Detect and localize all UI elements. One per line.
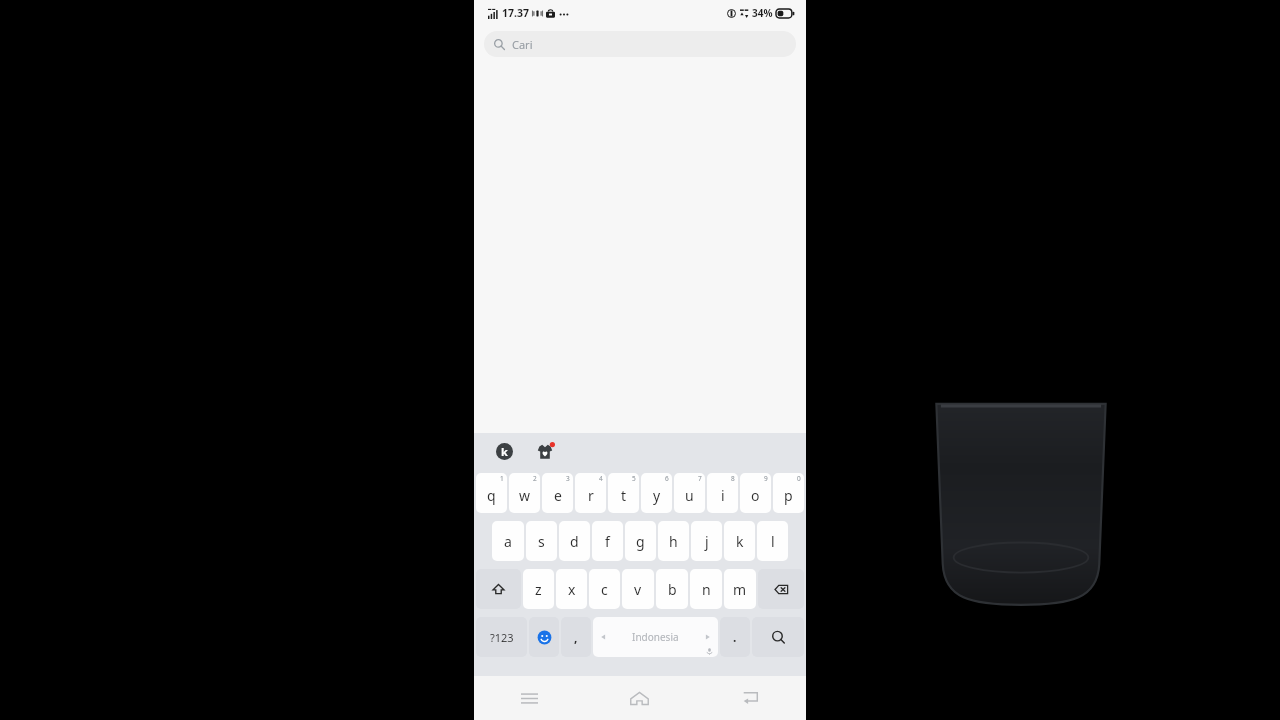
- staticText: Cari: [512, 37, 533, 52]
- button[interactable]: 5: [608, 473, 639, 513]
- staticText: n: [702, 580, 711, 599]
- staticText: o: [751, 486, 760, 505]
- button[interactable]: Stickers: [535, 442, 555, 462]
- staticText: v: [634, 580, 642, 599]
- button[interactable]: Back: [695, 676, 806, 720]
- staticText: ,: [574, 629, 578, 645]
- button[interactable]: j: [691, 521, 722, 561]
- staticText: h: [669, 532, 678, 551]
- staticText: t: [621, 486, 627, 505]
- button[interactable]: g: [625, 521, 656, 561]
- button[interactable]: 2: [509, 473, 540, 513]
- staticText: 0: [797, 474, 801, 483]
- button[interactable]: b: [656, 569, 688, 609]
- button[interactable]: ,: [561, 617, 591, 657]
- staticText: w: [519, 486, 531, 505]
- button[interactable]: v: [622, 569, 654, 609]
- button[interactable]: d: [559, 521, 590, 561]
- staticText: 7: [698, 474, 702, 483]
- button[interactable]: a: [492, 521, 524, 561]
- staticText: a: [504, 532, 512, 551]
- staticText: z: [535, 580, 542, 599]
- staticText: x: [568, 580, 576, 599]
- button[interactable]: k: [724, 521, 755, 561]
- staticText: k: [501, 444, 508, 459]
- staticText: 6: [665, 474, 669, 483]
- button[interactable]: Shift: [476, 569, 521, 609]
- staticText: l: [771, 532, 775, 551]
- button[interactable]: 6: [641, 473, 672, 513]
- staticText: s: [538, 532, 545, 551]
- staticText: 17.37: [502, 6, 529, 20]
- button[interactable]: x: [556, 569, 587, 609]
- button[interactable]: c: [589, 569, 620, 609]
- staticText: m: [733, 580, 747, 599]
- button[interactable]: Keyboard menu: [496, 443, 513, 460]
- staticText: r: [588, 486, 594, 505]
- staticText: 3: [566, 474, 570, 483]
- button[interactable]: l: [757, 521, 788, 561]
- button[interactable]: 0: [773, 473, 804, 513]
- staticText: 2: [533, 474, 537, 483]
- button[interactable]: h: [658, 521, 689, 561]
- staticText: b: [668, 580, 677, 599]
- staticText: i: [721, 486, 725, 505]
- button[interactable]: 1: [476, 473, 507, 513]
- button[interactable]: Search: [752, 617, 804, 657]
- staticText: ?123: [490, 630, 514, 645]
- staticText: g: [636, 532, 645, 551]
- button[interactable]: 4: [575, 473, 606, 513]
- button[interactable]: Space: [593, 617, 718, 657]
- staticText: q: [487, 486, 496, 505]
- staticText: y: [653, 486, 661, 505]
- button[interactable]: 3: [542, 473, 573, 513]
- staticText: c: [601, 580, 608, 599]
- button[interactable]: m: [724, 569, 756, 609]
- staticText: u: [685, 486, 694, 505]
- button[interactable]: Home: [584, 676, 695, 720]
- button[interactable]: s: [526, 521, 557, 561]
- staticText: 1: [500, 474, 504, 483]
- button[interactable]: ?123: [476, 617, 527, 657]
- staticText: 8: [731, 474, 735, 483]
- button[interactable]: n: [690, 569, 722, 609]
- staticText: p: [784, 486, 793, 505]
- button[interactable]: 8: [707, 473, 738, 513]
- staticText: 9: [764, 474, 768, 483]
- button[interactable]: Backspace: [758, 569, 804, 609]
- staticText: 34%: [752, 6, 773, 20]
- staticText: e: [554, 486, 562, 505]
- staticText: 5: [632, 474, 636, 483]
- staticText: d: [570, 532, 579, 551]
- button[interactable]: z: [523, 569, 554, 609]
- staticText: k: [736, 532, 744, 551]
- button[interactable]: f: [592, 521, 623, 561]
- staticText: f: [605, 532, 610, 551]
- staticText: 4: [599, 474, 603, 483]
- button[interactable]: Cari: [484, 31, 796, 57]
- button[interactable]: .: [720, 617, 750, 657]
- staticText: j: [705, 532, 709, 551]
- button[interactable]: Emoji: [529, 617, 559, 657]
- staticText: .: [733, 629, 737, 645]
- button[interactable]: 7: [674, 473, 705, 513]
- button[interactable]: Recent apps: [474, 676, 584, 720]
- staticText: Indonesia: [632, 630, 679, 644]
- button[interactable]: 9: [740, 473, 771, 513]
